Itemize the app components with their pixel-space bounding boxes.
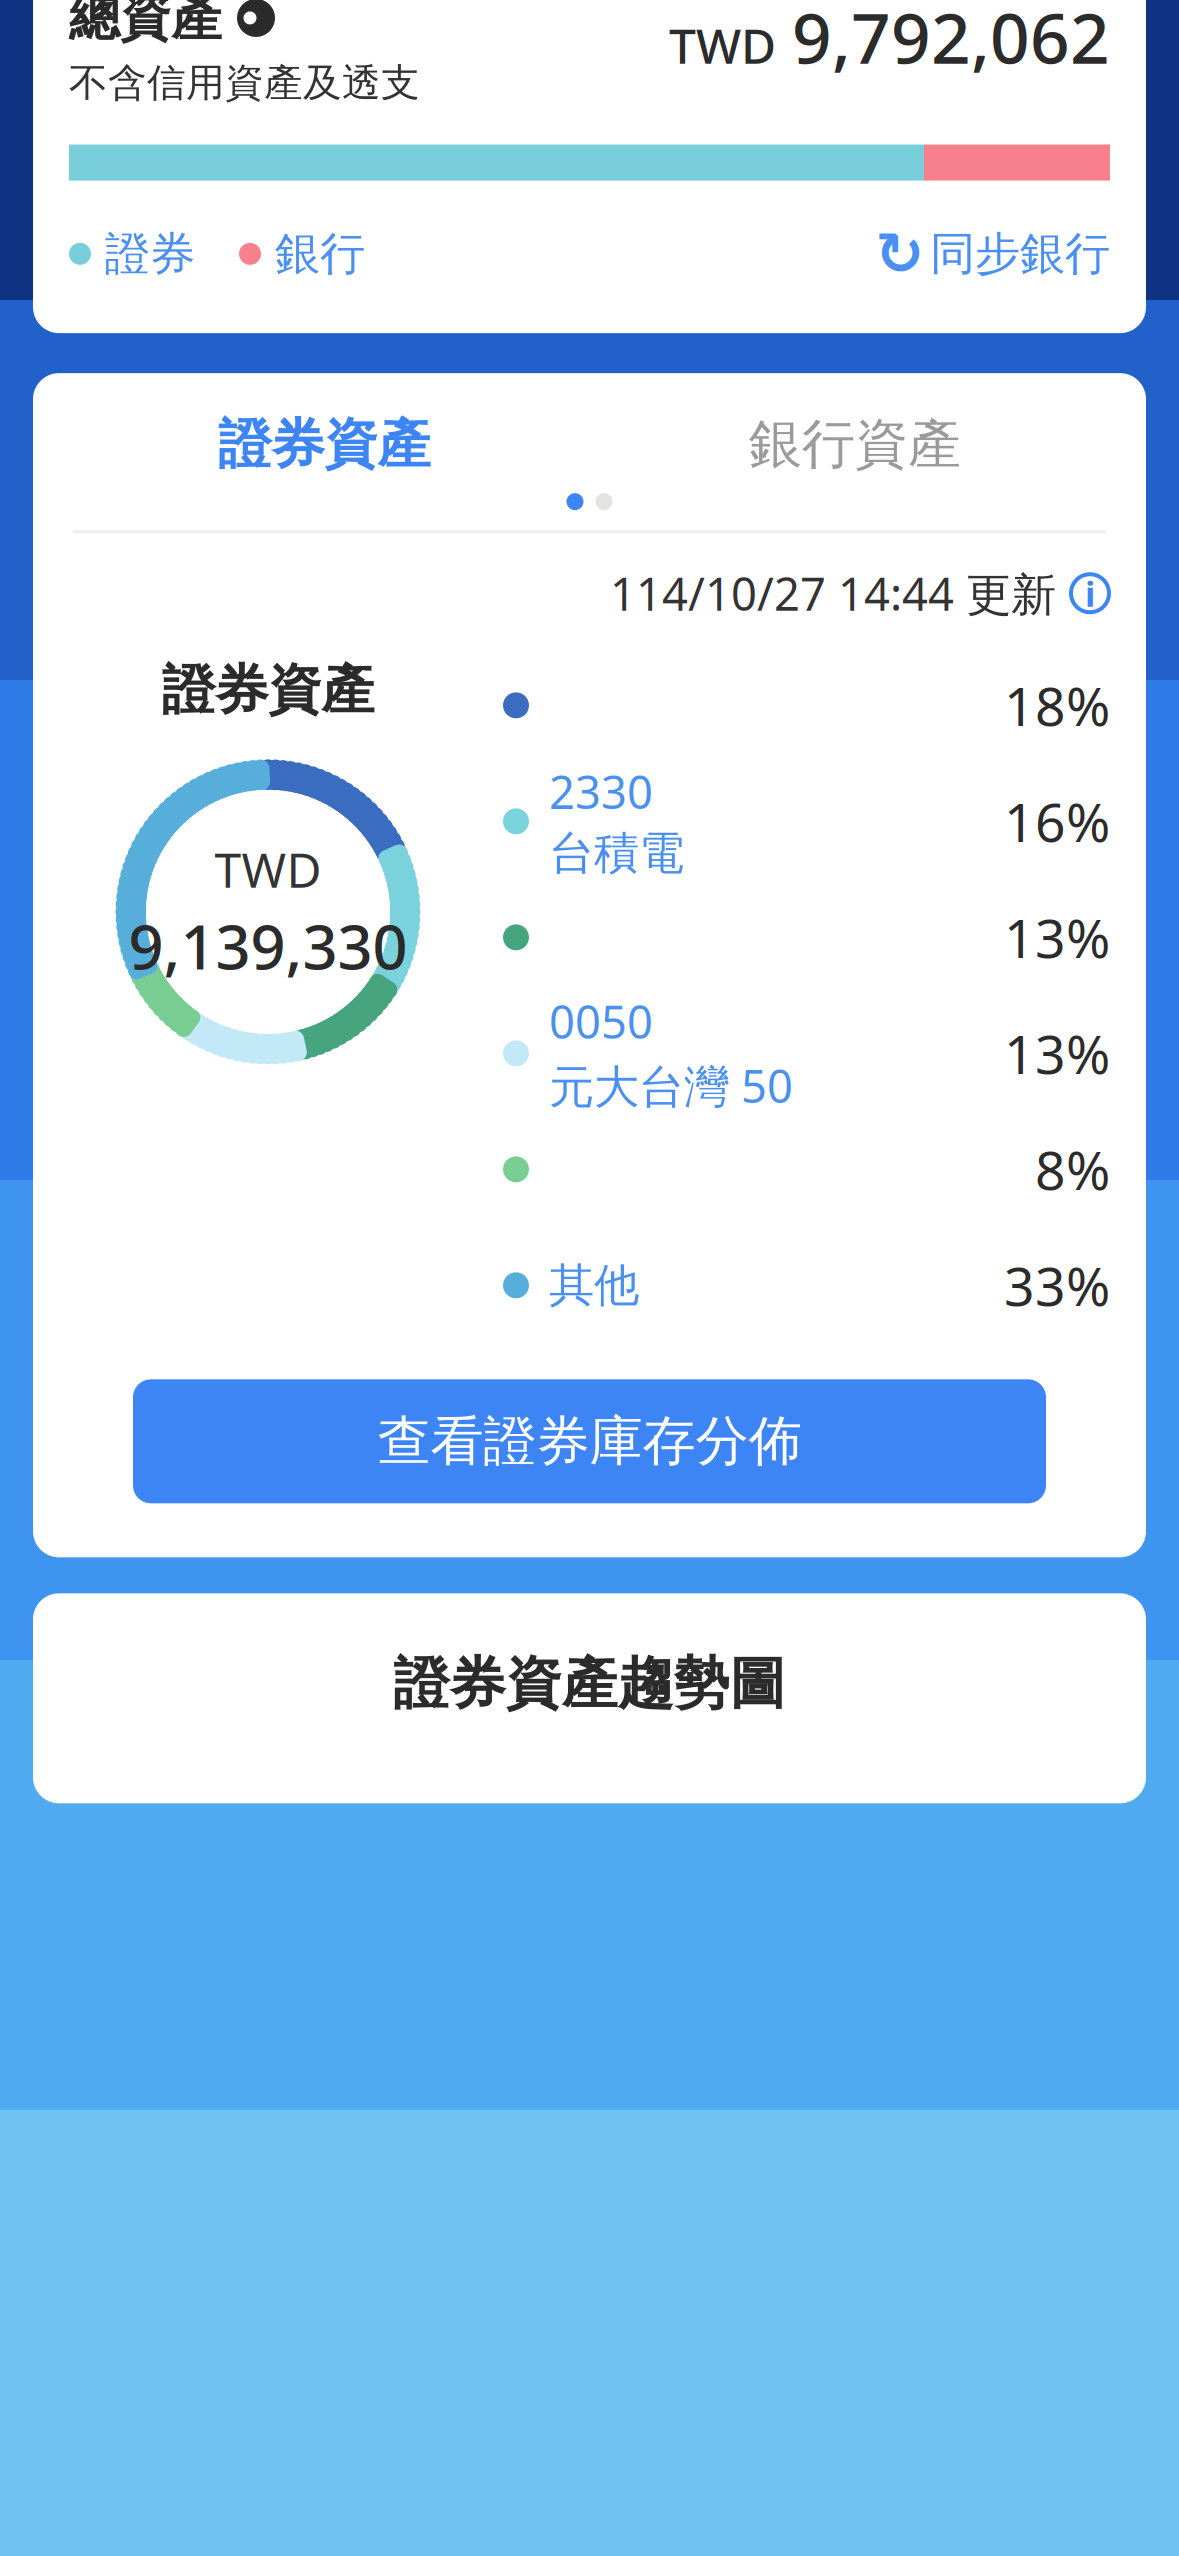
- staticText: 證券資產趨勢圖: [393, 1649, 785, 1718]
- staticText: 0050: [549, 991, 653, 1051]
- staticText: 總資產: [69, 0, 222, 49]
- staticText: 銀行資產: [749, 411, 961, 477]
- staticText: 同步銀行: [930, 226, 1110, 282]
- button[interactable]: ↻: [875, 220, 1110, 287]
- button[interactable]: 114/10/27 14:44 更新: [610, 563, 1110, 623]
- button[interactable]: 其他: [503, 1227, 1110, 1343]
- staticText: 銀行: [275, 226, 365, 282]
- button[interactable]: 13%: [503, 879, 1110, 995]
- staticText: 114/10/27 14:44 更新: [610, 563, 1056, 623]
- staticText: 9,139,330: [128, 905, 407, 986]
- staticText: ↻: [875, 220, 924, 287]
- staticText: 證券資產: [218, 411, 430, 477]
- staticText: 查看證券庫存分佈: [377, 1409, 801, 1474]
- button[interactable]: 8%: [503, 1111, 1110, 1227]
- staticText: TWD: [214, 837, 321, 901]
- staticText: 18%: [1004, 670, 1110, 741]
- button[interactable]: 2330: [503, 763, 1110, 879]
- staticText: 9,792,062: [792, 0, 1110, 83]
- staticText: 13%: [1004, 1018, 1110, 1089]
- staticText: 證券資產: [162, 657, 374, 723]
- staticText: 16%: [1004, 786, 1110, 857]
- staticText: 台積電: [549, 826, 684, 881]
- staticText: 元大台灣 50: [549, 1055, 793, 1115]
- staticText: 8%: [1035, 1134, 1110, 1205]
- staticText: 33%: [1004, 1250, 1110, 1321]
- staticText: i: [1085, 570, 1095, 616]
- staticText: 其他: [549, 1257, 639, 1313]
- staticText: 證券: [105, 226, 195, 282]
- staticText: 13%: [1004, 902, 1110, 973]
- staticText: 2330: [549, 761, 653, 822]
- button[interactable]: 銀行資產: [589, 401, 1120, 487]
- button[interactable]: 查看證券庫存分佈: [133, 1379, 1046, 1503]
- button[interactable]: 證券資產: [59, 401, 589, 487]
- staticText: TWD: [669, 13, 776, 77]
- staticText: 不含信用資產及透支: [69, 59, 420, 107]
- button[interactable]: 18%: [503, 647, 1110, 763]
- button[interactable]: 0050: [503, 995, 1110, 1111]
- button[interactable]: 總資產: [69, 0, 276, 49]
